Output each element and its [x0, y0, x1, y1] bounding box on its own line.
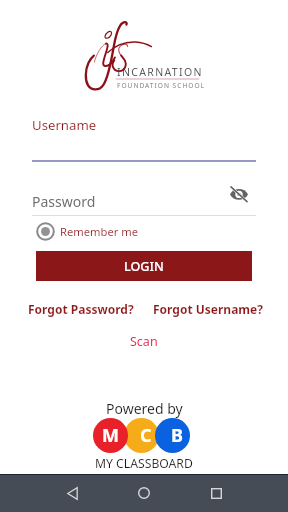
button[interactable]: LOGIN — [36, 251, 252, 281]
staticText: LOGIN — [124, 258, 164, 275]
staticText: B — [171, 423, 183, 448]
staticText: Scan — [130, 333, 158, 350]
button[interactable]: Show password — [229, 184, 249, 204]
staticText: C — [140, 423, 152, 448]
button[interactable]: Back — [57, 478, 87, 508]
button[interactable]: Forgot Password? — [28, 301, 134, 317]
button[interactable]: Forgot Username? — [153, 301, 263, 317]
button[interactable]: Remember me — [36, 221, 138, 241]
staticText: MY CLASSBOARD — [95, 455, 193, 472]
staticText: M — [102, 423, 119, 448]
staticText: Remember me — [60, 224, 138, 239]
staticText: INCARNATION — [117, 65, 203, 79]
staticText: Forgot Username? — [153, 301, 263, 317]
staticText: FOUNDATION SCHOOL — [117, 81, 206, 90]
button[interactable]: Recent apps — [201, 478, 231, 508]
staticText: Forgot Password? — [28, 301, 134, 317]
staticText: Powered by — [106, 399, 183, 418]
button[interactable]: Scan — [130, 333, 158, 350]
staticText: Password — [32, 192, 96, 211]
staticText: Username — [32, 116, 97, 134]
button[interactable]: Home — [129, 478, 159, 508]
